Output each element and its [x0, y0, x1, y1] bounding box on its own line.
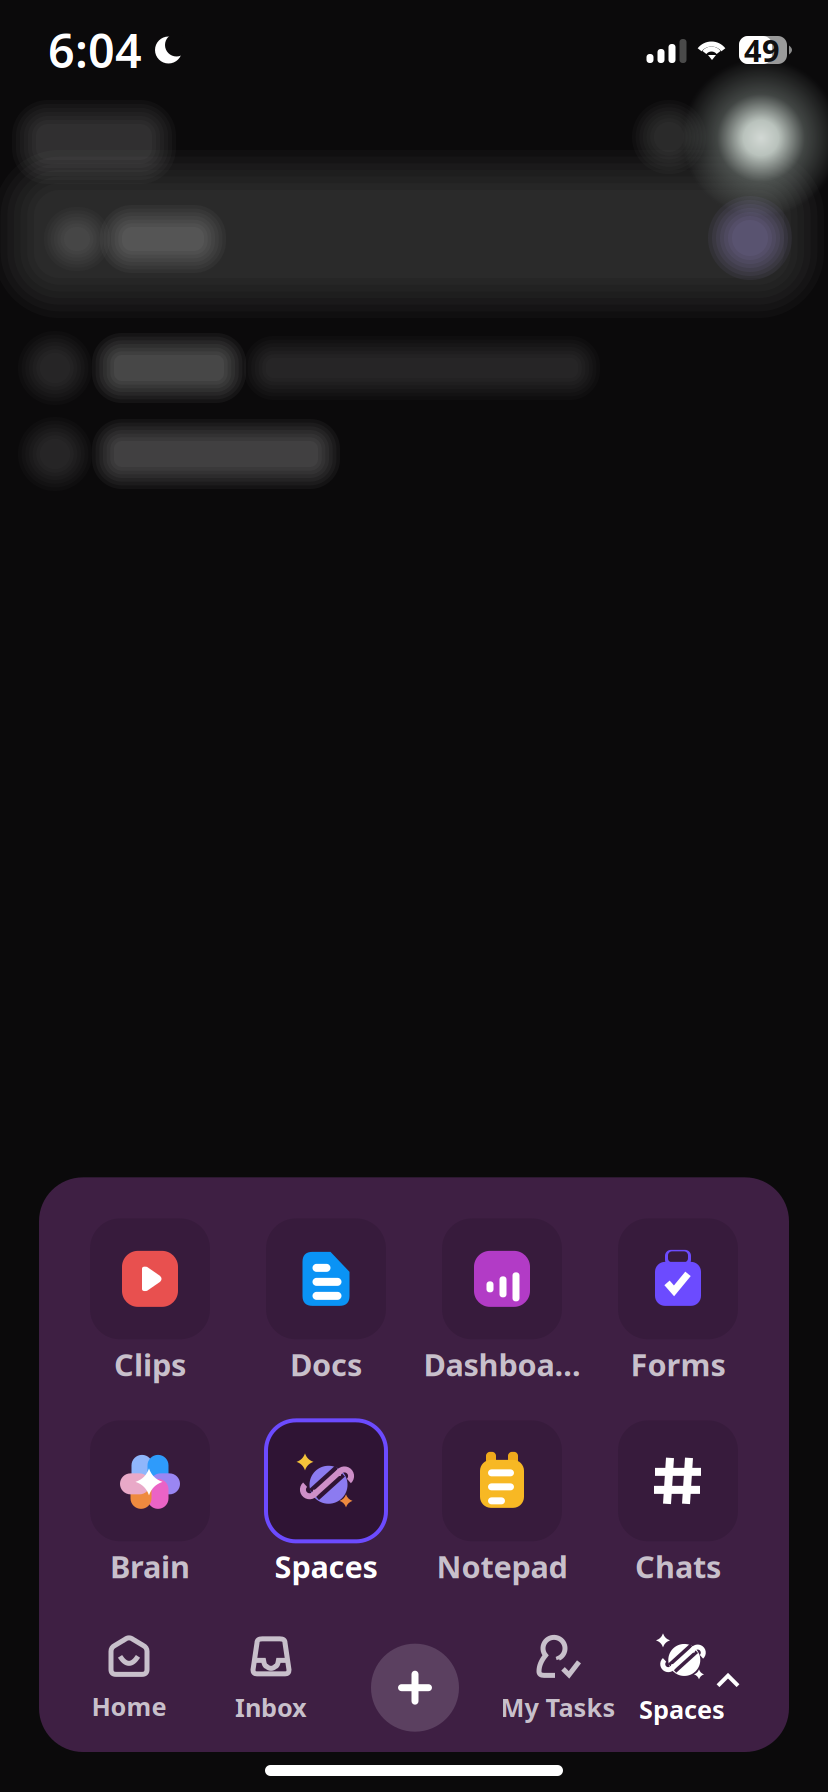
- button[interactable]: Notepad: [414, 1420, 590, 1581]
- staticText: Home: [91, 1689, 166, 1723]
- staticText: Docs: [290, 1344, 362, 1385]
- button[interactable]: Home: [58, 1634, 200, 1723]
- staticText: Notepad: [436, 1546, 567, 1587]
- staticText: Forms: [630, 1344, 725, 1385]
- staticText: 49: [744, 30, 780, 70]
- button[interactable]: Dashboa…: [414, 1218, 590, 1379]
- button[interactable]: Forms: [590, 1218, 766, 1379]
- staticText: Spaces: [274, 1546, 377, 1587]
- staticText: Spaces: [639, 1692, 725, 1726]
- button[interactable]: Brain: [62, 1420, 238, 1581]
- button[interactable]: My Tasks: [486, 1633, 630, 1724]
- button[interactable]: Spaces: [238, 1420, 414, 1581]
- button[interactable]: Inbox: [200, 1633, 342, 1724]
- staticText: Inbox: [235, 1690, 307, 1724]
- button[interactable]: Chats: [590, 1420, 766, 1581]
- staticText: My Tasks: [500, 1690, 615, 1724]
- staticText: Dashboa…: [423, 1344, 580, 1385]
- staticText: Chats: [635, 1546, 721, 1587]
- button[interactable]: Docs: [238, 1218, 414, 1379]
- staticText: Clips: [114, 1344, 186, 1385]
- button[interactable]: Create: [371, 1644, 459, 1732]
- button[interactable]: Spaces: [630, 1631, 734, 1726]
- staticText: Brain: [110, 1546, 190, 1587]
- staticText: 6:04: [48, 19, 142, 81]
- button[interactable]: Clips: [62, 1218, 238, 1379]
